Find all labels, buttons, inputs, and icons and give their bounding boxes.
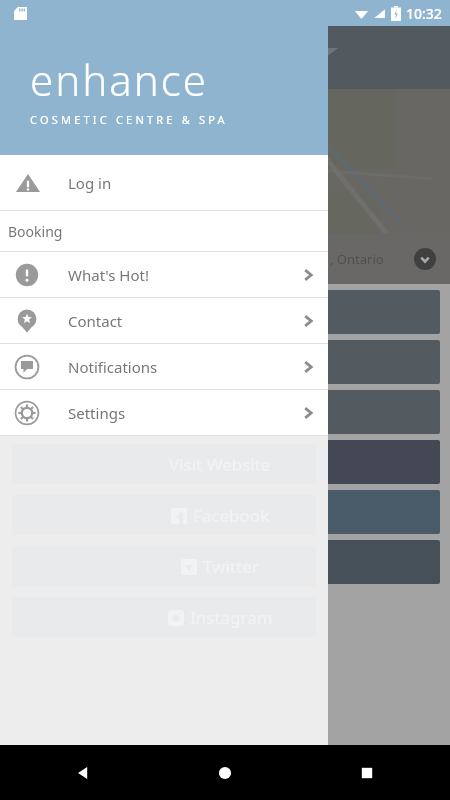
staticText: Booking: [8, 222, 63, 241]
button[interactable]: Recents: [354, 760, 380, 786]
button[interactable]: [10, 290, 440, 334]
staticText: COSMETIC CENTRE & SPA: [30, 112, 228, 127]
staticText: Contact: [68, 311, 123, 331]
staticText: What's Hot!: [68, 265, 150, 285]
staticText: Facebook: [193, 504, 270, 527]
button[interactable]: [10, 390, 440, 434]
staticText: Instagram: [190, 606, 273, 629]
button[interactable]: Home: [212, 760, 238, 786]
button[interactable]: [10, 540, 440, 584]
staticText: enhance: [30, 51, 208, 108]
button[interactable]: Settings: [0, 390, 328, 435]
button[interactable]: [10, 340, 440, 384]
staticText: 10:32: [406, 4, 442, 23]
staticText: Visit Website: [169, 453, 271, 476]
button[interactable]: [10, 490, 440, 534]
button[interactable]: What's Hot!: [0, 252, 328, 297]
button[interactable]: Back: [70, 760, 96, 786]
staticText: Settings: [68, 403, 126, 423]
button[interactable]: Expand: [414, 248, 436, 270]
button[interactable]: [10, 440, 440, 484]
staticText: Twitter: [203, 555, 259, 578]
button[interactable]: Contact: [0, 298, 328, 343]
button[interactable]: Notifications: [0, 344, 328, 389]
button[interactable]: Log in: [0, 155, 328, 210]
staticText: , Ontario: [330, 250, 384, 268]
staticText: Notifications: [68, 357, 158, 377]
staticText: Log in: [68, 173, 112, 193]
